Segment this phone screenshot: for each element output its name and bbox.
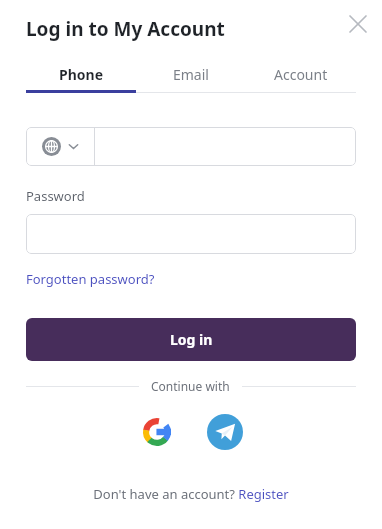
button[interactable]: Continue with Google	[137, 412, 177, 452]
button[interactable]: Password input	[26, 214, 356, 254]
button[interactable]: Email	[136, 58, 246, 90]
staticText: Log in	[170, 330, 213, 349]
staticText: Log in to My Account	[26, 16, 225, 42]
button[interactable]: Log in	[26, 318, 356, 361]
staticText: Forgotten password?	[26, 270, 155, 288]
staticText: Continue with	[151, 378, 230, 394]
button[interactable]: Phone number input	[95, 127, 356, 166]
staticText: Password	[26, 187, 85, 205]
button[interactable]: Continue with Telegram	[205, 412, 245, 452]
staticText: Email	[173, 65, 209, 84]
button[interactable]: Don't have an account? Register	[93, 485, 289, 503]
button[interactable]: Phone	[26, 58, 136, 90]
staticText: Phone	[59, 65, 104, 84]
button[interactable]: Close	[340, 6, 376, 42]
staticText: Don't have an account? Register	[93, 485, 289, 503]
button[interactable]: Select country code	[26, 127, 94, 166]
staticText: Account	[274, 65, 328, 84]
button[interactable]: Account	[246, 58, 356, 90]
button[interactable]: Forgotten password?	[26, 270, 155, 288]
